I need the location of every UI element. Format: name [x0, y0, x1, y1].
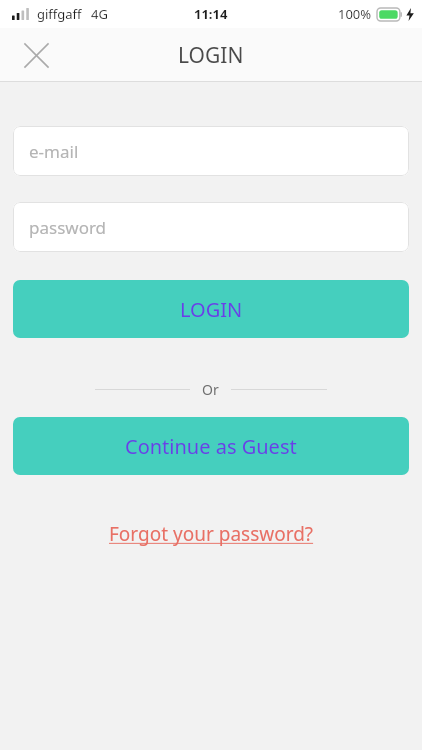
- button[interactable]: Close: [14, 33, 58, 77]
- staticText: 11:14: [194, 5, 228, 23]
- button[interactable]: Continue as Guest: [13, 417, 409, 475]
- staticText: Or: [202, 380, 219, 399]
- button[interactable]: e-mail: [13, 126, 409, 176]
- staticText: Continue as Guest: [125, 433, 297, 460]
- staticText: giffgaff: [37, 5, 82, 23]
- staticText: password: [29, 216, 107, 239]
- staticText: 100%: [338, 5, 372, 23]
- button[interactable]: LOGIN: [13, 280, 409, 338]
- staticText: LOGIN: [180, 296, 243, 323]
- button[interactable]: Forgot your password?: [99, 517, 324, 551]
- staticText: Forgot your password?: [109, 521, 314, 547]
- staticText: 4G: [91, 5, 108, 23]
- staticText: e-mail: [29, 140, 79, 163]
- staticText: LOGIN: [178, 41, 244, 70]
- button[interactable]: password: [13, 202, 409, 252]
